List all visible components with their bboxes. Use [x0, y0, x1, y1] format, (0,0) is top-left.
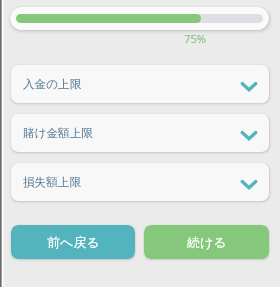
button[interactable]: 続ける — [144, 225, 269, 259]
staticText: 賭け金額上限 — [23, 126, 93, 141]
other: Expand 損失額上限 — [239, 175, 259, 195]
staticText: 入金の上限 — [23, 77, 82, 92]
button[interactable]: 損失額上限 — [11, 163, 269, 201]
staticText: 75% — [140, 31, 250, 46]
other: Expand 賭け金額上限 — [239, 126, 259, 146]
staticText: 前へ戻る — [47, 234, 100, 250]
button[interactable]: 前へ戻る — [11, 225, 135, 259]
other: Expand 入金の上限 — [239, 77, 259, 97]
staticText: 続ける — [187, 234, 227, 250]
button[interactable]: 賭け金額上限 — [11, 114, 269, 152]
button[interactable]: 入金の上限 — [11, 65, 269, 103]
staticText: 損失額上限 — [23, 175, 81, 190]
